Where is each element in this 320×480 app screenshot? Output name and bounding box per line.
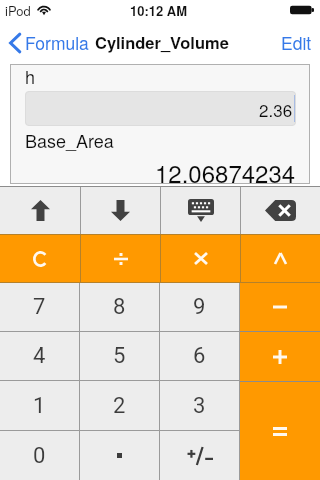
staticText: iPod — [5, 1, 31, 20]
button[interactable]: 0 — [0, 431, 79, 480]
button[interactable]: 4 — [0, 332, 79, 380]
button[interactable]: 7 — [0, 283, 79, 331]
button[interactable]: Multiply — [161, 235, 240, 282]
staticText: 6 — [193, 343, 206, 369]
button[interactable]: Formula — [6, 26, 91, 59]
staticText: Base_Area — [25, 127, 114, 153]
button[interactable]: Divide — [81, 235, 160, 282]
staticText: 9 — [193, 294, 206, 320]
button[interactable]: Minus — [240, 283, 320, 331]
button[interactable]: Delete — [241, 187, 320, 234]
staticText: h — [25, 63, 36, 89]
button[interactable]: 8 — [80, 283, 159, 331]
button[interactable] — [160, 431, 239, 480]
staticText: Edit — [281, 30, 312, 55]
staticText: 7 — [33, 294, 46, 320]
button[interactable] — [80, 431, 159, 480]
staticText: Formula — [25, 30, 89, 55]
button[interactable]: Plus — [240, 332, 320, 381]
staticText: 0 — [33, 443, 46, 469]
button[interactable]: Move up — [0, 187, 80, 234]
staticText: Cylinder_Volume — [95, 30, 229, 54]
button[interactable]: 2 — [80, 381, 159, 430]
button[interactable]: 1 — [0, 381, 79, 430]
staticText: 2.36 — [259, 97, 293, 121]
button[interactable]: Equals — [240, 382, 320, 480]
staticText: 8 — [113, 294, 126, 320]
button[interactable]: 5 — [80, 332, 159, 380]
staticText: 5 — [113, 343, 126, 369]
button[interactable]: 3 — [160, 381, 239, 430]
button[interactable]: 2.36 — [25, 91, 296, 126]
staticText: 10:12 AM — [130, 1, 188, 20]
staticText: 2 — [113, 393, 126, 419]
button[interactable]: Move down — [81, 187, 160, 234]
button[interactable]: Hide keyboard — [161, 187, 240, 234]
button[interactable]: 9 — [160, 283, 239, 331]
button[interactable]: Clear — [0, 235, 80, 282]
staticText: 3 — [193, 393, 206, 419]
button[interactable]: 6 — [160, 332, 239, 380]
button[interactable]: Power — [241, 235, 320, 282]
button[interactable]: Edit — [278, 26, 315, 59]
staticText: 1 — [33, 393, 46, 419]
staticText: 4 — [33, 343, 46, 369]
staticText: 12.06874234 — [155, 155, 296, 189]
